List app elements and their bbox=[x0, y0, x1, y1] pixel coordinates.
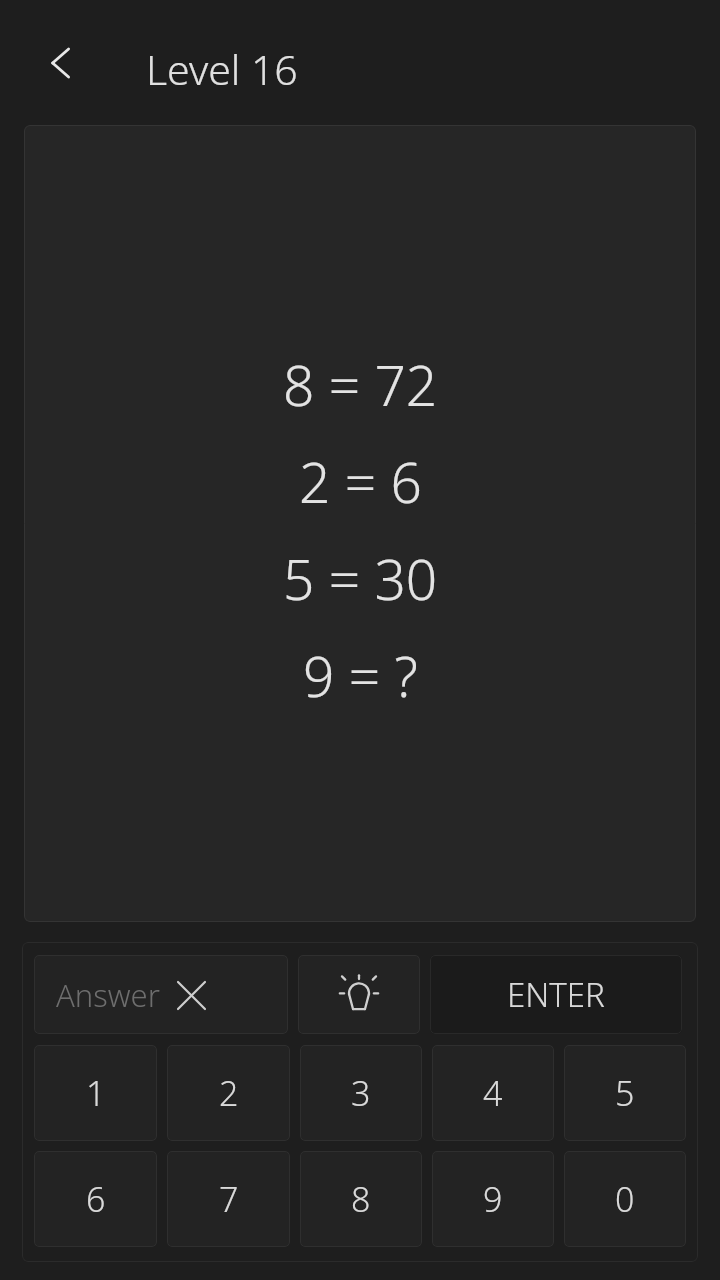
staticText: 8 = 72 bbox=[283, 347, 438, 422]
staticText: Level 16 bbox=[146, 41, 298, 97]
staticText: ENTER bbox=[507, 972, 605, 1017]
staticText: 1 bbox=[86, 1070, 106, 1116]
staticText: 9 = ? bbox=[303, 638, 418, 713]
button[interactable]: Hint bbox=[298, 955, 420, 1034]
button[interactable]: 7 bbox=[167, 1151, 290, 1247]
button[interactable]: 5 bbox=[564, 1045, 686, 1141]
button[interactable]: 9 bbox=[432, 1151, 554, 1247]
button[interactable]: 6 bbox=[34, 1151, 157, 1247]
button[interactable]: 3 bbox=[300, 1045, 422, 1141]
staticText: 2 = 6 bbox=[299, 444, 422, 519]
staticText: 5 = 30 bbox=[283, 541, 438, 616]
button[interactable]: Answer bbox=[34, 955, 288, 1034]
staticText: 7 bbox=[219, 1176, 239, 1222]
button[interactable]: 4 bbox=[432, 1045, 554, 1141]
staticText: 2 bbox=[219, 1070, 239, 1116]
button[interactable]: 1 bbox=[34, 1045, 157, 1141]
staticText: 6 bbox=[86, 1176, 106, 1222]
staticText: 9 bbox=[483, 1176, 503, 1222]
staticText: 8 bbox=[351, 1176, 371, 1222]
button[interactable]: 0 bbox=[564, 1151, 686, 1247]
button[interactable]: Back bbox=[29, 31, 93, 95]
button[interactable]: ENTER bbox=[430, 955, 682, 1034]
staticText: 0 bbox=[615, 1176, 635, 1222]
staticText: 5 bbox=[615, 1070, 635, 1116]
button[interactable]: 8 bbox=[300, 1151, 422, 1247]
button[interactable]: 2 bbox=[167, 1045, 290, 1141]
staticText: 3 bbox=[351, 1070, 371, 1116]
staticText: 4 bbox=[483, 1070, 503, 1116]
other: Clear answer bbox=[174, 978, 208, 1012]
staticText: Answer bbox=[56, 974, 160, 1016]
